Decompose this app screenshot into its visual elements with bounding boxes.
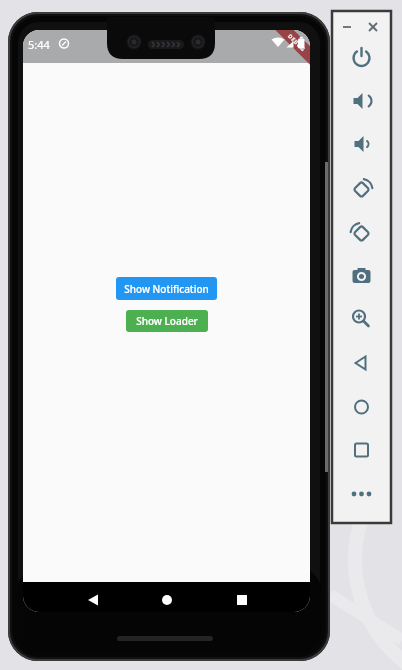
- button[interactable]: [338, 478, 378, 510]
- button[interactable]: [338, 41, 378, 73]
- button[interactable]: [338, 391, 378, 423]
- button[interactable]: [338, 172, 378, 204]
- button[interactable]: [338, 260, 378, 292]
- button[interactable]: [338, 85, 378, 117]
- button[interactable]: Show Loader: [126, 310, 208, 332]
- staticText: Show Notification: [124, 282, 209, 296]
- button[interactable]: Show Notification: [116, 277, 217, 300]
- button[interactable]: [338, 434, 378, 466]
- button[interactable]: [338, 216, 378, 248]
- button[interactable]: [338, 128, 378, 160]
- staticText: DEBUG: [287, 32, 307, 53]
- staticText: Show Loader: [136, 314, 198, 328]
- staticText: 5:44: [28, 37, 50, 52]
- button[interactable]: [338, 347, 378, 379]
- button[interactable]: [338, 303, 378, 335]
